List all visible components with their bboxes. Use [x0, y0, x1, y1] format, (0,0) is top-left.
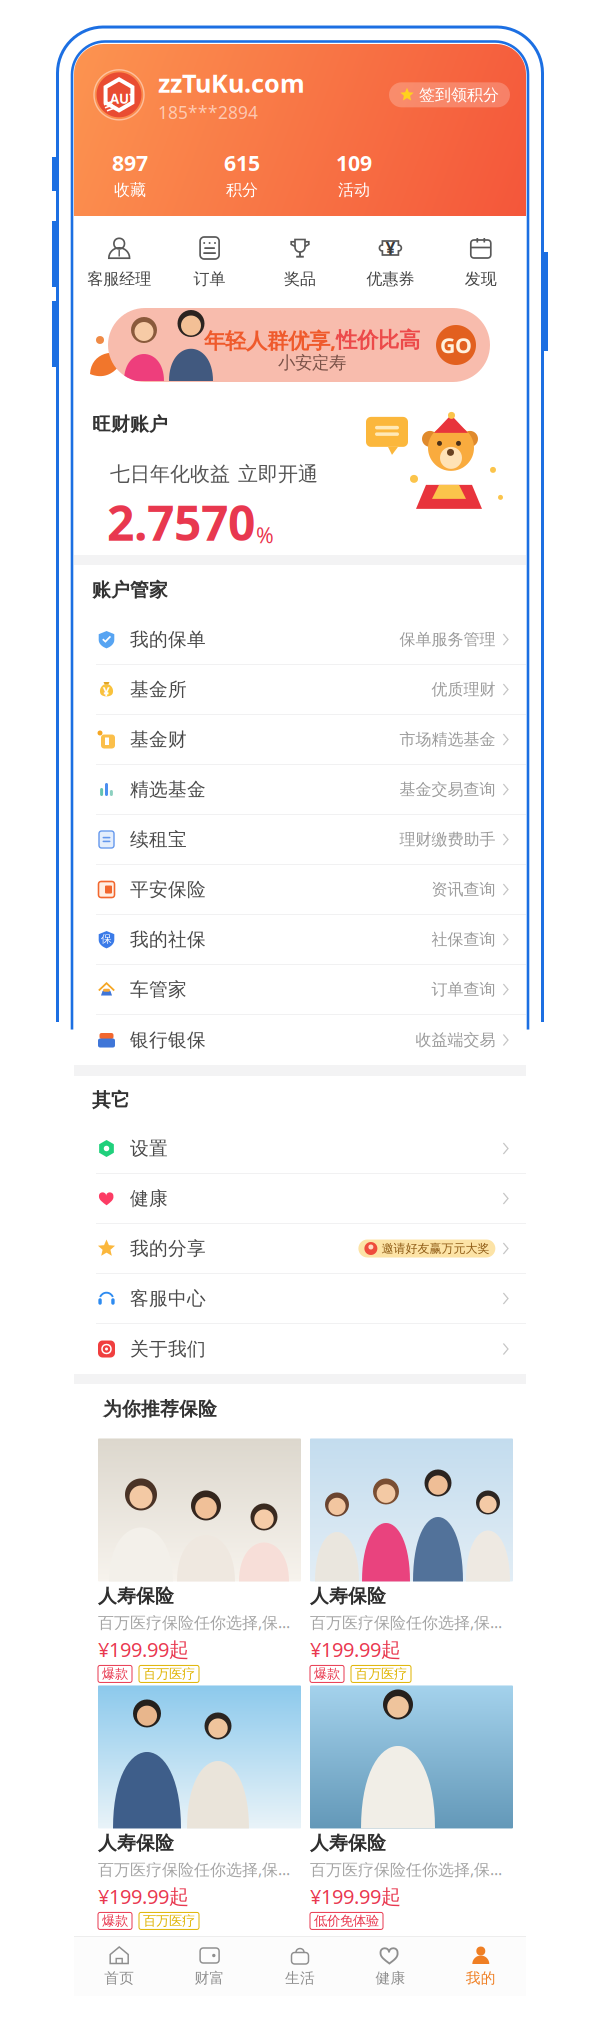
button[interactable]: ¥	[345, 216, 436, 300]
button[interactable]: 订单	[164, 216, 255, 300]
staticText: ¥199.99起	[98, 1636, 189, 1662]
staticText: 我的保单	[130, 628, 206, 651]
staticText: 保	[101, 932, 112, 945]
button[interactable]: 897	[74, 149, 186, 200]
staticText: 基金财	[130, 728, 187, 751]
button[interactable]: 615	[186, 149, 298, 200]
staticText: 百万医疗	[143, 1666, 195, 1682]
staticText: 百万医疗	[355, 1666, 407, 1682]
staticText: 首页	[104, 1969, 134, 1987]
button[interactable]: 签到领积分	[389, 82, 510, 107]
staticText: 资讯查询	[431, 880, 495, 899]
staticText: 保单服务管理	[399, 630, 495, 649]
button[interactable]: 续租宝	[74, 815, 526, 865]
button[interactable]: 健康	[345, 1937, 436, 1996]
staticText: 市场精选基金	[399, 730, 495, 749]
staticText: 2.7570	[107, 490, 255, 554]
staticText: 七日年化收益	[110, 462, 230, 486]
staticText: 优质理财	[431, 680, 495, 699]
button[interactable]: 我的分享	[74, 1224, 526, 1274]
staticText: 我的分享	[130, 1237, 206, 1260]
staticText: ¥199.99起	[310, 1636, 401, 1662]
button[interactable]: 我的保单	[74, 615, 526, 665]
button[interactable]: ¥	[74, 665, 526, 715]
staticText: 续租宝	[130, 828, 187, 851]
staticText: 健康	[130, 1187, 168, 1210]
button[interactable]: 客服中心	[74, 1274, 526, 1324]
button[interactable]: 银行银保	[74, 1015, 526, 1065]
staticText: 为你推荐保险	[103, 1397, 217, 1420]
staticText: ¥	[103, 683, 110, 699]
staticText: 性价比高	[336, 327, 420, 353]
button[interactable]: 发现	[436, 216, 526, 300]
staticText: 客服经理	[87, 269, 151, 289]
button[interactable]: 客服经理	[74, 216, 164, 300]
staticText: 旺财账户	[92, 413, 168, 436]
staticText: 爆款	[102, 1666, 128, 1682]
button[interactable]: 人寿保险	[98, 1685, 301, 1932]
staticText: 银行银保	[130, 1028, 206, 1051]
staticText: ¥199.99起	[310, 1883, 401, 1909]
staticText: 其它	[92, 1088, 130, 1111]
staticText: 人寿保险	[310, 1831, 386, 1854]
button[interactable]: 关于我们	[74, 1324, 526, 1374]
button[interactable]: 我的	[436, 1937, 526, 1996]
staticText: 邀请好友赢万元大奖	[381, 1241, 489, 1256]
staticText: 基金所	[130, 678, 187, 701]
button[interactable]: 平安保险	[74, 865, 526, 915]
staticText: 精选基金	[130, 778, 206, 801]
staticText: AUI	[110, 90, 134, 107]
staticText: ¥199.99起	[98, 1883, 189, 1909]
staticText: ¥	[385, 236, 395, 259]
button[interactable]: 基金财	[74, 715, 526, 765]
staticText: 百万医疗保险任你选择,保障最低...	[98, 1611, 301, 1633]
staticText: 人寿保险	[98, 1584, 174, 1607]
button[interactable]: 精选基金	[74, 765, 526, 815]
button[interactable]: 健康	[74, 1174, 526, 1224]
button[interactable]: 车管家	[74, 965, 526, 1015]
staticText: GO	[440, 331, 472, 359]
button[interactable]: 人寿保险	[98, 1438, 301, 1685]
staticText: 活动	[338, 180, 370, 200]
staticText: 平安保险	[130, 878, 206, 901]
button[interactable]: 人寿保险	[310, 1438, 513, 1685]
staticText: 发现	[465, 269, 497, 289]
staticText: 收藏	[114, 180, 146, 200]
staticText: 奖品	[284, 269, 316, 289]
staticText: 车管家	[130, 978, 187, 1001]
staticText: 185***2894	[158, 101, 258, 124]
staticText: 109	[336, 149, 372, 177]
staticText: 财富	[195, 1969, 225, 1987]
staticText: 设置	[130, 1137, 168, 1160]
staticText: 签到领积分	[419, 85, 499, 105]
button[interactable]: 旺财账户	[74, 390, 526, 555]
staticText: 低价免体验	[314, 1913, 379, 1929]
staticText: 客服中心	[130, 1287, 206, 1310]
button[interactable]: 年轻人群优享,	[74, 300, 526, 390]
button[interactable]: 人寿保险	[310, 1685, 513, 1932]
button[interactable]: 奖品	[255, 216, 345, 300]
staticText: 立即开通	[238, 462, 318, 486]
staticText: 百万医疗保险任你选择,保障最低...	[310, 1858, 513, 1880]
staticText: 社保查询	[431, 930, 495, 949]
staticText: 百万医疗保险任你选择,保障最低...	[310, 1611, 513, 1633]
staticText: 我的	[466, 1969, 496, 1987]
button[interactable]: 109	[298, 149, 410, 200]
staticText: 订单	[194, 269, 226, 289]
button[interactable]: 设置	[74, 1124, 526, 1174]
staticText: zzTuKu.com	[158, 66, 305, 100]
staticText: 健康	[375, 1969, 405, 1987]
button[interactable]: 首页	[74, 1937, 164, 1996]
staticText: 基金交易查询	[399, 780, 495, 799]
button[interactable]: 保	[74, 915, 526, 965]
staticText: 收益端交易	[415, 1030, 495, 1050]
button[interactable]: 财富	[164, 1937, 255, 1996]
button[interactable]: 生活	[255, 1937, 345, 1996]
staticText: 897	[112, 149, 148, 177]
staticText: 账户管家	[92, 578, 168, 601]
staticText: 人寿保险	[310, 1584, 386, 1607]
staticText: 爆款	[314, 1666, 340, 1682]
staticText: 爆款	[102, 1913, 128, 1929]
staticText: %	[256, 521, 274, 549]
staticText: 订单查询	[431, 980, 495, 999]
